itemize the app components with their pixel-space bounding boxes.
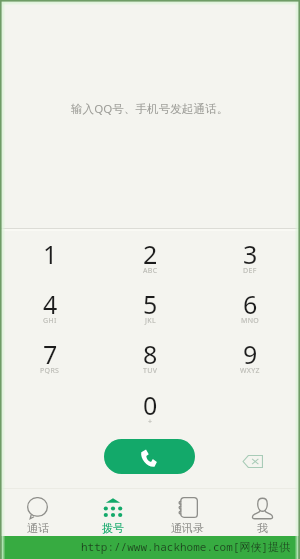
button[interactable]: 9 <box>200 330 300 380</box>
staticText: 0 <box>143 388 158 422</box>
staticText: 4 <box>43 287 58 321</box>
staticText: GHI <box>43 316 57 326</box>
staticText: PQRS <box>40 366 60 376</box>
button[interactable]: 0 <box>100 381 200 431</box>
staticText: 输入QQ号、手机号发起通话。 <box>71 101 229 117</box>
button[interactable]: 3 <box>200 230 300 280</box>
staticText: DEF <box>243 266 257 276</box>
button[interactable] <box>200 381 300 431</box>
staticText: + <box>148 417 153 427</box>
button[interactable]: Call <box>104 439 195 474</box>
button[interactable]: 5 <box>100 280 200 330</box>
button[interactable]: 4 <box>0 280 100 330</box>
staticText: http://www.hackhome.com[网侠]提供 <box>81 539 290 554</box>
staticText: 通讯录 <box>171 521 204 535</box>
staticText: WXYZ <box>240 366 260 376</box>
button[interactable]: 8 <box>100 330 200 380</box>
button[interactable]: 2 <box>100 230 200 280</box>
button[interactable]: 6 <box>200 280 300 330</box>
button[interactable]: 通讯录 <box>150 489 225 536</box>
button[interactable]: Backspace <box>234 447 270 476</box>
staticText: 通话 <box>27 521 49 535</box>
button[interactable]: 通话 <box>0 489 75 536</box>
staticText: 5 <box>143 287 158 321</box>
staticText: 拨号 <box>102 521 124 535</box>
staticText: 1 <box>43 237 58 271</box>
staticText: 2 <box>143 237 158 271</box>
staticText: 我 <box>257 521 268 535</box>
staticText: 7 <box>43 337 58 371</box>
staticText: TUV <box>143 366 158 376</box>
button[interactable]: 拨号 <box>75 489 150 536</box>
staticText: 3 <box>243 237 258 271</box>
staticText: 8 <box>143 337 158 371</box>
staticText: JKL <box>145 316 156 326</box>
staticText: ABC <box>143 266 158 276</box>
staticText: 6 <box>243 287 258 321</box>
staticText: MNO <box>241 316 260 326</box>
staticText: 9 <box>243 337 258 371</box>
button[interactable] <box>0 381 100 431</box>
button[interactable]: 7 <box>0 330 100 380</box>
button[interactable]: 1 <box>0 230 100 280</box>
button[interactable]: 我 <box>225 489 300 536</box>
